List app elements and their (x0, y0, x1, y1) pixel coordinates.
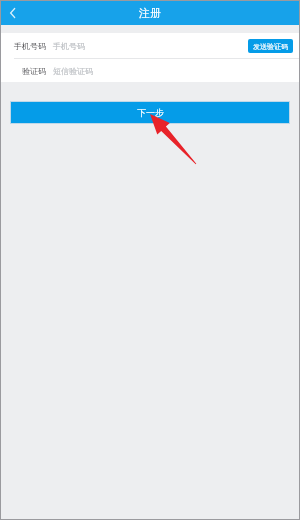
button[interactable]: Back (0, 0, 26, 25)
button[interactable]: 手机号码 (0, 33, 300, 58)
staticText: 短信验证码 (53, 66, 293, 76)
button[interactable]: 发送验证码 (248, 39, 293, 53)
staticText: 手机号码 (53, 41, 248, 51)
staticText: 注册 (139, 6, 161, 20)
staticText: 发送验证码 (253, 42, 288, 51)
button[interactable]: 下一步 (10, 101, 290, 124)
staticText: 手机号码 (14, 41, 46, 51)
staticText: 验证码 (22, 66, 46, 76)
staticText: 下一步 (137, 107, 164, 118)
button[interactable]: 验证码 (0, 59, 300, 82)
